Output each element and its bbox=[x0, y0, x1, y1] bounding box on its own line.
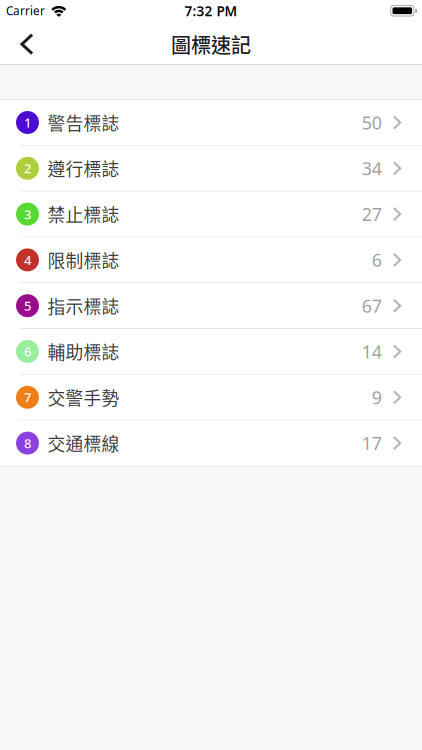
button[interactable]: 7 bbox=[0, 375, 422, 421]
button[interactable]: 3 bbox=[0, 192, 422, 237]
staticText: 圖標速記 bbox=[171, 30, 251, 59]
staticText: 2 bbox=[24, 159, 31, 177]
staticText: 4 bbox=[24, 251, 31, 269]
staticText: 67 bbox=[362, 293, 382, 318]
staticText: 6 bbox=[24, 343, 31, 360]
staticText: 3 bbox=[24, 205, 31, 223]
button[interactable]: 6 bbox=[0, 329, 422, 375]
staticText: 50 bbox=[362, 110, 382, 135]
staticText: 輔助標誌 bbox=[47, 339, 119, 364]
button[interactable]: 2 bbox=[0, 146, 422, 192]
staticText: 限制標誌 bbox=[47, 247, 119, 273]
staticText: 1 bbox=[24, 114, 31, 131]
staticText: 交警手勢 bbox=[47, 384, 119, 410]
button[interactable]: 4 bbox=[0, 237, 422, 283]
staticText: 禁止標誌 bbox=[47, 201, 119, 227]
staticText: Carrier bbox=[6, 3, 45, 19]
staticText: 指示標誌 bbox=[47, 293, 119, 319]
button[interactable]: Back bbox=[0, 23, 46, 65]
staticText: 27 bbox=[362, 202, 382, 226]
button[interactable]: 5 bbox=[0, 283, 422, 329]
staticText: 遵行標誌 bbox=[47, 155, 119, 181]
staticText: 14 bbox=[362, 339, 382, 364]
button[interactable]: 1 bbox=[0, 100, 422, 146]
staticText: 警告標誌 bbox=[47, 110, 119, 135]
staticText: 34 bbox=[362, 156, 382, 180]
staticText: 交通標線 bbox=[47, 430, 119, 456]
staticText: 6 bbox=[372, 248, 382, 272]
staticText: 8 bbox=[24, 434, 31, 452]
staticText: 5 bbox=[24, 297, 31, 315]
staticText: 17 bbox=[362, 431, 382, 455]
staticText: 7 bbox=[24, 388, 31, 406]
staticText: 7:32 PM bbox=[184, 2, 237, 20]
staticText: 9 bbox=[372, 385, 382, 409]
button[interactable]: 8 bbox=[0, 421, 422, 466]
